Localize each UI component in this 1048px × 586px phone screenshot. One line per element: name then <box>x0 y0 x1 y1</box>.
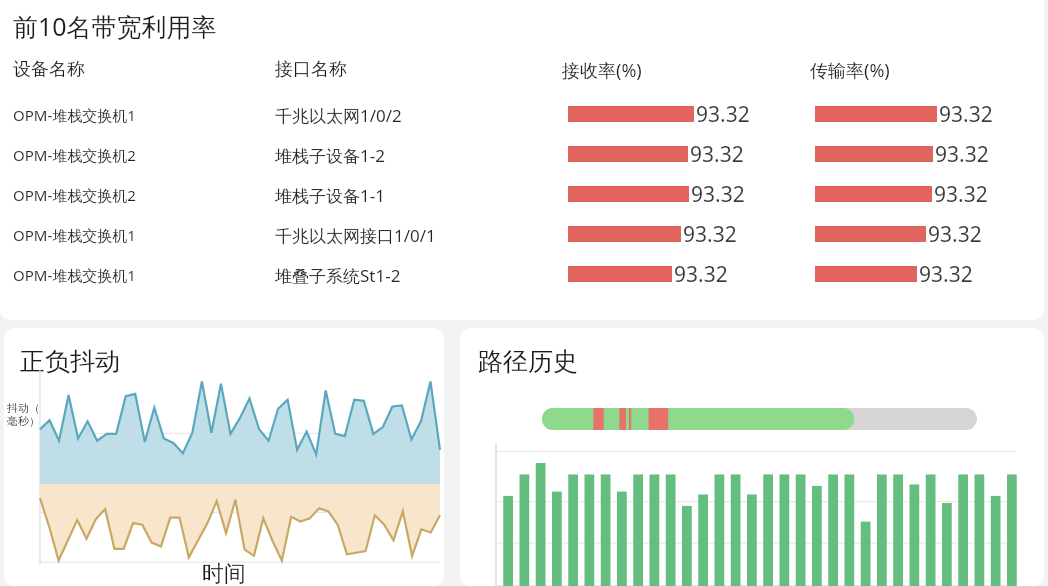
button[interactable]: 前10名带宽利用率 <box>0 0 1044 320</box>
staticText: 前10名带宽利用率 <box>13 9 217 43</box>
staticText: OPM-堆栈交换机1 <box>13 265 136 285</box>
staticText: 93.32 <box>683 220 737 249</box>
staticText: 路径历史 <box>478 346 578 377</box>
staticText: 千兆以太网接口1/0/1 <box>275 224 436 247</box>
button[interactable]: OPM-堆栈交换机1 <box>0 98 1044 132</box>
button[interactable]: 正负抖动 <box>4 328 444 586</box>
staticText: 千兆以太网1/0/2 <box>275 104 402 127</box>
staticText: 接口名称 <box>275 58 347 81</box>
staticText: 93.32 <box>690 140 744 169</box>
staticText: 抖动（ 毫秒） <box>7 401 40 429</box>
staticText: 93.32 <box>696 100 750 129</box>
staticText: OPM-堆栈交换机1 <box>13 105 136 125</box>
staticText: 设备名称 <box>13 58 85 81</box>
staticText: 93.32 <box>928 220 982 249</box>
button[interactable]: OPM-堆栈交换机1 <box>0 218 1044 252</box>
staticText: 传输率(%) <box>810 58 890 83</box>
staticText: OPM-堆栈交换机2 <box>13 185 136 205</box>
staticText: 93.32 <box>691 180 745 209</box>
staticText: OPM-堆栈交换机1 <box>13 225 136 245</box>
staticText: 93.32 <box>919 260 973 289</box>
button[interactable]: OPM-堆栈交换机1 <box>0 258 1044 292</box>
button[interactable]: OPM-堆栈交换机2 <box>0 138 1044 172</box>
staticText: OPM-堆栈交换机2 <box>13 145 136 165</box>
staticText: 堆栈子设备1-1 <box>275 184 385 207</box>
staticText: 正负抖动 <box>20 346 120 377</box>
button[interactable]: OPM-堆栈交换机2 <box>0 178 1044 212</box>
staticText: 时间 <box>4 560 444 586</box>
staticText: 接收率(%) <box>562 58 642 83</box>
staticText: 堆栈子设备1-2 <box>275 144 385 167</box>
staticText: 堆叠子系统St1-2 <box>275 264 401 287</box>
staticText: 93.32 <box>674 260 728 289</box>
staticText: 93.32 <box>934 180 988 209</box>
staticText: 93.32 <box>935 140 989 169</box>
staticText: 93.32 <box>939 100 993 129</box>
button[interactable]: 路径历史 <box>460 328 1044 586</box>
other: Path status bar <box>542 408 977 430</box>
